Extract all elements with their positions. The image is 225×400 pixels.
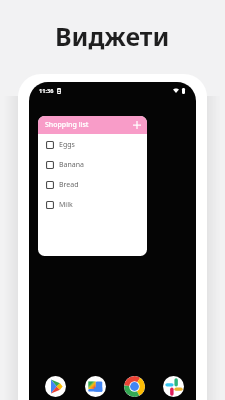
button[interactable]: Play Store bbox=[45, 376, 66, 397]
button[interactable]: Chrome bbox=[124, 376, 145, 397]
button[interactable]: Eggs bbox=[38, 135, 147, 155]
button[interactable]: Banana bbox=[38, 155, 147, 175]
staticText: Banana bbox=[59, 160, 84, 170]
button[interactable]: Shopping list bbox=[38, 116, 147, 134]
staticText: Shopping list bbox=[45, 120, 89, 130]
staticText: Виджети bbox=[55, 19, 170, 53]
staticText: 11:36 bbox=[39, 87, 54, 95]
button[interactable]: Photos bbox=[85, 376, 106, 397]
button[interactable]: Bread bbox=[38, 175, 147, 195]
staticText: Eggs bbox=[59, 140, 75, 150]
staticText: Milk bbox=[59, 200, 73, 210]
button[interactable]: Milk bbox=[38, 195, 147, 215]
staticText: Bread bbox=[59, 180, 79, 190]
button[interactable]: Add item bbox=[131, 119, 143, 131]
button[interactable]: Slack bbox=[163, 376, 184, 397]
